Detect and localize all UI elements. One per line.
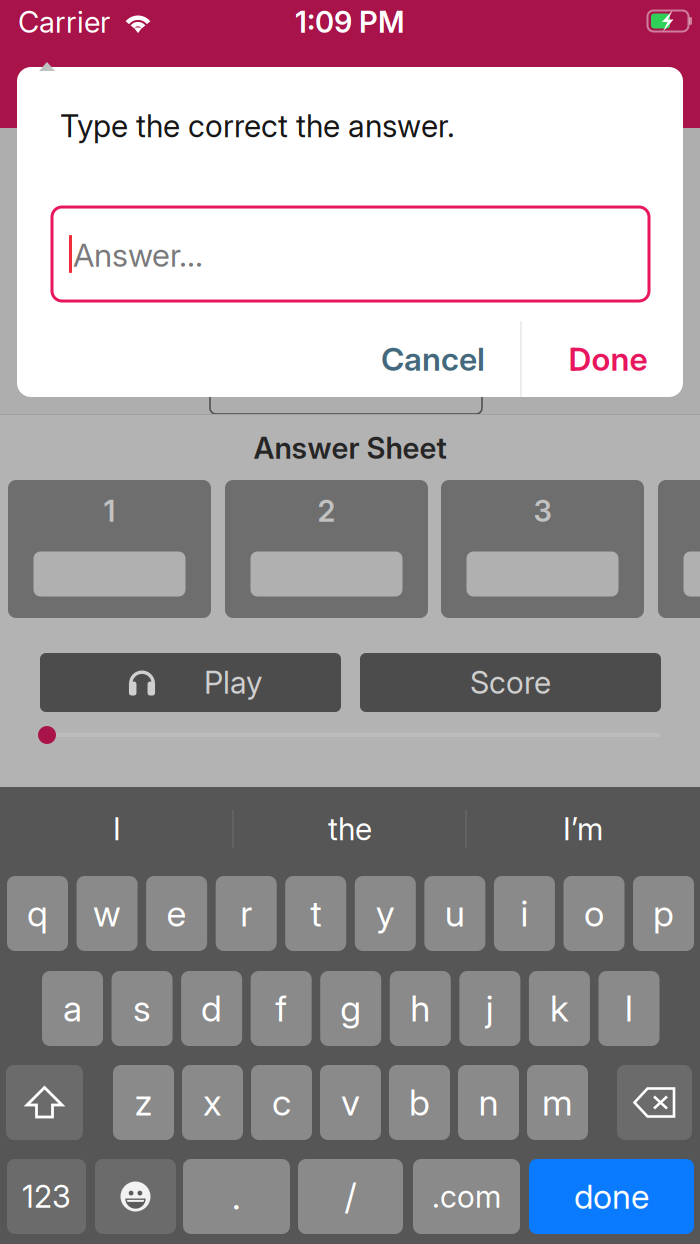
staticText: q	[27, 892, 48, 935]
button[interactable]: /	[298, 1159, 403, 1234]
button[interactable]: Done	[527, 321, 689, 397]
button[interactable]: d	[181, 971, 242, 1046]
button[interactable]: i	[494, 876, 555, 951]
button[interactable]: q	[7, 876, 68, 951]
button[interactable]: v	[320, 1065, 381, 1140]
staticText: Cancel	[381, 340, 485, 378]
button[interactable]: p	[633, 876, 694, 951]
staticText: y	[376, 892, 395, 935]
button[interactable]: Delete	[617, 1065, 692, 1140]
button[interactable]: b	[389, 1065, 450, 1140]
button[interactable]: g	[320, 971, 381, 1046]
staticText: c	[272, 1081, 291, 1124]
staticText: i	[520, 892, 528, 935]
button[interactable]: j	[459, 971, 520, 1046]
button[interactable]: Shift	[6, 1065, 83, 1140]
staticText: z	[134, 1081, 152, 1124]
staticText: Score	[470, 664, 551, 701]
staticText: Answer...	[73, 236, 203, 274]
staticText: a	[63, 987, 82, 1030]
button[interactable]: r	[216, 876, 277, 951]
button[interactable]: o	[563, 876, 624, 951]
button[interactable]: Play	[40, 653, 341, 712]
button[interactable]: t	[285, 876, 346, 951]
staticText: .	[232, 1175, 241, 1218]
button[interactable]: e	[146, 876, 207, 951]
staticText: j	[486, 987, 494, 1030]
staticText: 1:09 PM	[295, 4, 405, 40]
staticText: d	[201, 987, 222, 1030]
staticText: Done	[568, 340, 647, 378]
staticText: h	[410, 987, 430, 1030]
button[interactable]: .com	[413, 1159, 520, 1234]
button[interactable]: h	[390, 971, 451, 1046]
button[interactable]: s	[112, 971, 173, 1046]
staticText: /	[344, 1175, 356, 1218]
button[interactable]: a	[42, 971, 103, 1046]
staticText: 3	[533, 493, 551, 529]
staticText: t	[310, 892, 321, 935]
staticText: 123	[22, 1178, 71, 1215]
button[interactable]: .	[183, 1159, 290, 1234]
staticText: r	[240, 892, 252, 935]
staticText: done	[574, 1176, 649, 1217]
staticText: f	[275, 987, 287, 1030]
button[interactable]: m	[527, 1065, 588, 1140]
staticText: I’m	[563, 810, 603, 847]
staticText: 1	[103, 493, 115, 529]
staticText: .com	[432, 1178, 501, 1215]
button[interactable]: Emoji keyboard	[95, 1159, 176, 1234]
staticText: Play	[204, 664, 262, 701]
staticText: e	[167, 892, 187, 935]
button[interactable]: done	[529, 1159, 694, 1234]
button[interactable]: c	[251, 1065, 312, 1140]
button[interactable]: f	[251, 971, 312, 1046]
staticText: k	[550, 987, 569, 1030]
staticText: I	[113, 810, 121, 847]
button[interactable]: u	[424, 876, 485, 951]
staticText: u	[445, 892, 465, 935]
button[interactable]: z	[113, 1065, 174, 1140]
button[interactable]: w	[77, 876, 138, 951]
staticText: n	[478, 1081, 498, 1124]
staticText: p	[653, 892, 674, 935]
button[interactable]: l	[598, 971, 659, 1046]
button[interactable]: k	[529, 971, 590, 1046]
staticText: Carrier	[18, 4, 110, 40]
staticText: g	[340, 987, 361, 1030]
staticText: o	[584, 892, 604, 935]
staticText: the	[328, 810, 372, 847]
staticText: w	[93, 892, 121, 935]
staticText: m	[542, 1081, 573, 1124]
button[interactable]: n	[458, 1065, 519, 1140]
staticText: s	[133, 987, 151, 1030]
staticText: b	[409, 1081, 430, 1124]
staticText: Type the correct the answer.	[60, 107, 455, 144]
staticText: Answer Sheet	[253, 430, 446, 466]
button[interactable]: Score	[360, 653, 661, 712]
staticText: l	[625, 987, 633, 1030]
button[interactable]: Cancel	[348, 321, 518, 397]
staticText: v	[341, 1081, 360, 1124]
button[interactable]: 123	[7, 1159, 86, 1234]
staticText: x	[203, 1081, 222, 1124]
button[interactable]: x	[182, 1065, 243, 1140]
staticText: 2	[317, 493, 335, 529]
button[interactable]: y	[355, 876, 416, 951]
